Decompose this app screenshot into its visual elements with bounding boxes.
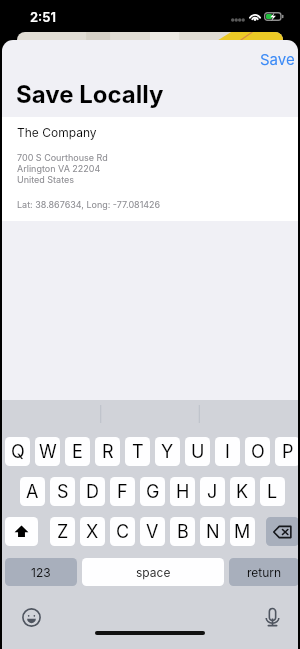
staticText: Q bbox=[11, 441, 25, 463]
staticText: L bbox=[267, 481, 278, 503]
staticText: P bbox=[282, 441, 294, 463]
button[interactable]: C bbox=[110, 517, 135, 546]
button[interactable]: Z bbox=[50, 517, 75, 546]
staticText: C bbox=[116, 521, 130, 543]
staticText: A bbox=[26, 481, 39, 503]
button[interactable]: N bbox=[200, 517, 225, 546]
button[interactable]: G bbox=[140, 477, 165, 506]
staticText: J bbox=[207, 481, 218, 503]
staticText: The Company bbox=[17, 125, 97, 140]
staticText: 2:51 bbox=[30, 9, 56, 25]
button[interactable]: J bbox=[200, 477, 225, 506]
button[interactable]: L bbox=[260, 477, 285, 506]
button[interactable]: Q bbox=[5, 437, 30, 466]
staticText: S bbox=[57, 481, 69, 503]
staticText: Save Locally bbox=[16, 80, 164, 109]
staticText: I bbox=[225, 441, 230, 463]
button[interactable]: return bbox=[229, 558, 298, 586]
staticText: E bbox=[72, 441, 83, 463]
staticText: W bbox=[39, 441, 57, 463]
staticText: N bbox=[206, 521, 220, 543]
button[interactable]: K bbox=[230, 477, 255, 506]
button[interactable]: O bbox=[245, 437, 270, 466]
button[interactable]: F bbox=[110, 477, 135, 506]
button[interactable]: R bbox=[95, 437, 120, 466]
button[interactable]: E bbox=[65, 437, 90, 466]
staticText: V bbox=[146, 521, 159, 543]
button[interactable]: M bbox=[230, 517, 255, 546]
staticText: O bbox=[251, 441, 265, 463]
staticText: Lat: 38.867634, Long: -77.081426 bbox=[17, 199, 161, 210]
staticText: B bbox=[177, 521, 189, 543]
button[interactable]: W bbox=[35, 437, 60, 466]
button[interactable]: U bbox=[185, 437, 210, 466]
staticText: G bbox=[146, 481, 160, 503]
button[interactable]: Emoji keyboard bbox=[22, 608, 41, 627]
button[interactable]: P bbox=[275, 437, 298, 466]
staticText: Z bbox=[57, 521, 69, 543]
staticText: X bbox=[86, 521, 99, 543]
staticText: R bbox=[102, 441, 114, 463]
staticText: T bbox=[132, 441, 144, 463]
staticText: United States bbox=[17, 174, 75, 185]
staticText: U bbox=[191, 441, 205, 463]
staticText: Save bbox=[260, 50, 295, 68]
button[interactable]: Y bbox=[155, 437, 180, 466]
staticText: Y bbox=[161, 441, 174, 463]
button[interactable]: 123 bbox=[5, 558, 77, 586]
button[interactable]: Shift bbox=[5, 517, 38, 546]
button[interactable]: T bbox=[125, 437, 150, 466]
button[interactable]: Save bbox=[252, 46, 298, 72]
button[interactable]: V bbox=[140, 517, 165, 546]
staticText: return bbox=[247, 565, 282, 580]
button[interactable]: Dictation bbox=[265, 608, 280, 627]
button[interactable]: Backspace bbox=[266, 517, 298, 546]
button[interactable]: D bbox=[80, 477, 105, 506]
button[interactable]: S bbox=[50, 477, 75, 506]
button[interactable]: I bbox=[215, 437, 240, 466]
staticText: M bbox=[234, 521, 251, 543]
button[interactable]: B bbox=[170, 517, 195, 546]
staticText: K bbox=[236, 481, 249, 503]
staticText: 123 bbox=[31, 565, 51, 580]
staticText: H bbox=[176, 481, 190, 503]
staticText: Arlington VA 22204 bbox=[17, 163, 101, 174]
button[interactable]: space bbox=[82, 558, 224, 586]
staticText: 700 S Courthouse Rd bbox=[17, 152, 108, 163]
button[interactable]: X bbox=[80, 517, 105, 546]
staticText: F bbox=[117, 481, 128, 503]
button[interactable]: H bbox=[170, 477, 195, 506]
staticText: D bbox=[86, 481, 99, 503]
button[interactable]: A bbox=[20, 477, 45, 506]
staticText: space bbox=[136, 565, 171, 580]
